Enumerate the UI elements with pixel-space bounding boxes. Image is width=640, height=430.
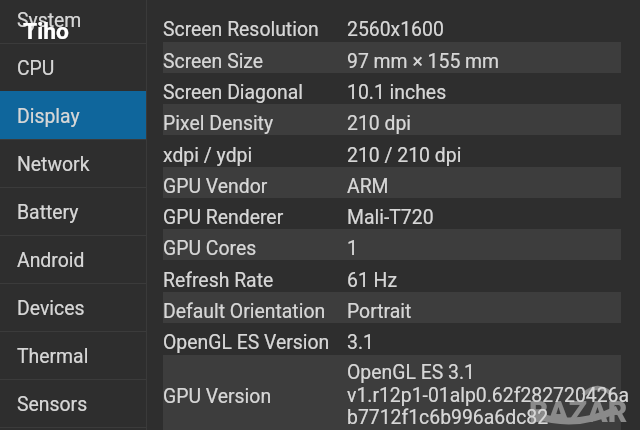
- staticText: OpenGL ES Version: [163, 331, 330, 354]
- button[interactable]: CPU: [0, 43, 147, 91]
- staticText: Display: [17, 105, 80, 128]
- button[interactable]: Screen Resolution: [163, 10, 621, 41]
- button[interactable]: Devices: [0, 283, 147, 331]
- button[interactable]: Thermal: [0, 331, 147, 379]
- staticText: Refresh Rate: [163, 269, 274, 292]
- button[interactable]: Network: [0, 139, 147, 187]
- staticText: 1: [347, 237, 358, 260]
- staticText: GPU Vendor: [163, 175, 268, 198]
- staticText: xdpi / ydpi: [163, 144, 253, 167]
- staticText: Portrait: [347, 300, 412, 323]
- button[interactable]: Android: [0, 235, 147, 283]
- staticText: CPU: [17, 57, 55, 80]
- button[interactable]: OpenGL ES Version: [163, 323, 621, 354]
- staticText: Screen Size: [163, 50, 264, 73]
- staticText: Screen Resolution: [163, 18, 319, 41]
- staticText: System: [17, 9, 82, 32]
- button[interactable]: GPU Cores: [163, 229, 621, 260]
- button[interactable]: Refresh Rate: [163, 261, 621, 292]
- button[interactable]: GPU Version: [163, 355, 621, 430]
- button[interactable]: GPU Renderer: [163, 198, 621, 229]
- staticText: BAZAR: [529, 394, 628, 429]
- staticText: Thermal: [17, 345, 89, 368]
- staticText: 10.1 inches: [347, 81, 447, 104]
- staticText: GPU Version: [163, 385, 272, 408]
- button[interactable]: Default Orientation: [163, 292, 621, 323]
- staticText: Devices: [17, 297, 85, 320]
- button[interactable]: Screen Size: [163, 42, 621, 73]
- button[interactable]: System: [0, 0, 147, 43]
- button[interactable]: Pixel Density: [163, 104, 621, 135]
- staticText: ARM: [347, 175, 389, 198]
- staticText: 210 / 210 dpi: [347, 144, 462, 167]
- button[interactable]: Battery: [0, 187, 147, 235]
- button[interactable]: Display: [0, 91, 147, 139]
- staticText: Tiho: [23, 18, 69, 45]
- staticText: Sensors: [17, 393, 88, 416]
- staticText: Battery: [17, 201, 79, 224]
- staticText: 97 mm × 155 mm: [347, 50, 500, 73]
- button[interactable]: Sensors: [0, 379, 147, 427]
- staticText: 2560x1600: [347, 18, 444, 41]
- staticText: OpenGL ES 3.1 v1.r12p1-01alp0.62f2827204…: [347, 361, 630, 428]
- staticText: Android: [17, 249, 85, 272]
- staticText: Pixel Density: [163, 112, 274, 135]
- staticText: GPU Renderer: [163, 206, 284, 229]
- button[interactable]: Screen Diagonal: [163, 73, 621, 104]
- staticText: 3.1: [347, 331, 374, 354]
- button[interactable]: xdpi / ydpi: [163, 136, 621, 167]
- button[interactable]: GPU Vendor: [163, 167, 621, 198]
- staticText: GPU Cores: [163, 237, 257, 260]
- staticText: 61 Hz: [347, 269, 398, 292]
- staticText: Network: [17, 153, 90, 176]
- staticText: 210 dpi: [347, 112, 412, 135]
- staticText: Mali-T720: [347, 206, 434, 229]
- staticText: Default Orientation: [163, 300, 326, 323]
- staticText: Screen Diagonal: [163, 81, 304, 104]
